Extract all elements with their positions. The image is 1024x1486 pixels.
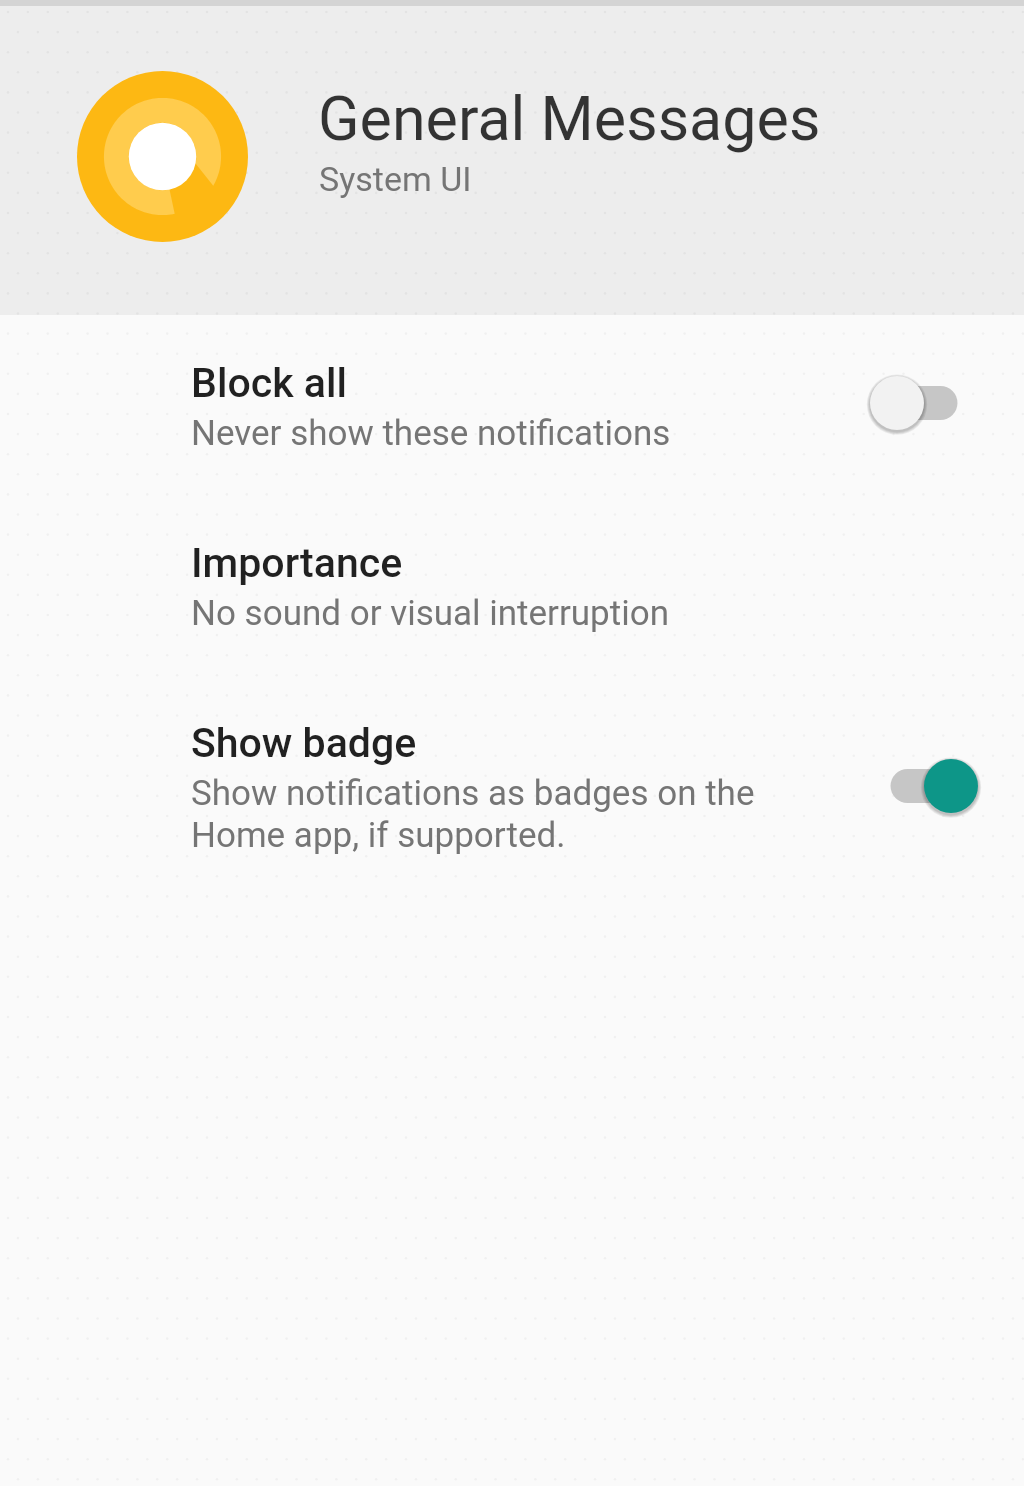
staticText: Never show these notifications bbox=[191, 413, 671, 454]
staticText: Block all bbox=[191, 359, 347, 407]
button[interactable]: Show badge, on bbox=[870, 759, 978, 813]
staticText: System UI bbox=[319, 159, 472, 199]
button[interactable]: Importance bbox=[0, 535, 1024, 655]
staticText: Show notifications as badges on the Home… bbox=[191, 773, 755, 856]
button[interactable]: Block all, off bbox=[870, 376, 978, 430]
staticText: No sound or visual interruption bbox=[191, 593, 670, 634]
button[interactable]: Block all bbox=[0, 355, 1024, 475]
staticText: General Messages bbox=[318, 83, 821, 154]
button[interactable]: Show badge bbox=[0, 715, 1024, 875]
staticText: Show badge bbox=[191, 719, 417, 767]
staticText: Importance bbox=[191, 539, 403, 587]
